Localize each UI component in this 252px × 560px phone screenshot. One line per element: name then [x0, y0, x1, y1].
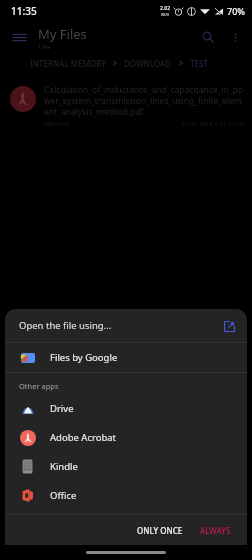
button[interactable]: Adobe Acrobat — [5, 423, 247, 452]
button[interactable]: Open in new window — [220, 317, 238, 335]
staticText: 330.04 KB — [44, 120, 70, 127]
button[interactable]: Drive — [5, 394, 247, 423]
button[interactable]: Office — [5, 481, 247, 510]
button[interactable]: Search — [194, 23, 222, 51]
staticText: ONLY ONCE — [137, 525, 183, 536]
button[interactable]: ONLY ONCE — [131, 521, 189, 540]
staticText: Files by Google — [50, 351, 118, 364]
staticText: Other apps — [19, 381, 59, 391]
staticText: KB/S — [161, 12, 170, 17]
button[interactable]: DOWNLOAD — [124, 58, 172, 69]
button[interactable]: INTERNAL MEMORY — [30, 58, 106, 69]
staticText: Drive — [50, 402, 74, 415]
staticText: TEST — [190, 58, 208, 69]
button[interactable]: Files by Google — [5, 343, 247, 372]
button[interactable]: Open navigation menu — [6, 24, 32, 50]
staticText: 2.02 — [160, 5, 170, 12]
staticText: DOWNLOAD — [124, 58, 172, 69]
staticText: 11:35 — [11, 4, 37, 18]
button[interactable]: TEST — [190, 58, 208, 69]
staticText: Office — [50, 489, 77, 502]
button[interactable]: Calculation_of_inductance_and_capacitanc… — [0, 78, 252, 136]
staticText: 26-Oct-2018, 6:41:32 am — [181, 120, 244, 127]
staticText: 1 file — [38, 43, 51, 50]
staticText: Calculation_of_inductance_and_capacitanc… — [44, 84, 244, 117]
staticText: My Files — [38, 25, 87, 43]
staticText: 70% — [227, 5, 245, 17]
staticText: Adobe Acrobat — [50, 431, 117, 444]
staticText: Open the file using… — [19, 319, 112, 332]
button[interactable]: ALWAYS — [194, 521, 237, 540]
staticText: Kindle — [50, 460, 78, 473]
button[interactable]: More options — [222, 24, 248, 50]
staticText: ALWAYS — [200, 525, 231, 536]
button[interactable]: Kindle — [5, 452, 247, 481]
staticText: INTERNAL MEMORY — [30, 58, 106, 69]
